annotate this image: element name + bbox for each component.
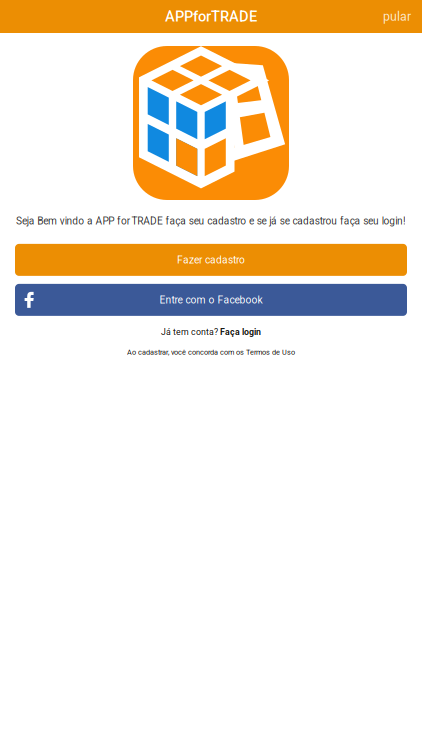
staticText: Fazer cadastro bbox=[177, 254, 245, 266]
button[interactable]: Já tem conta? Faça login bbox=[151, 323, 271, 341]
button[interactable]: Fazer cadastro bbox=[15, 244, 407, 276]
button[interactable]: Ao cadastrar, você concorda com os Termo… bbox=[117, 345, 305, 359]
staticText: APPforTRADE bbox=[165, 8, 257, 25]
button[interactable]: pular bbox=[372, 1, 422, 32]
staticText: Ao cadastrar, você concorda com os Termo… bbox=[127, 348, 295, 356]
staticText: Seja Bem vindo a APP for TRADE faça seu … bbox=[16, 215, 406, 227]
button[interactable]: Entre com o Facebook bbox=[15, 284, 407, 316]
staticText: pular bbox=[383, 9, 411, 24]
staticText: Já tem conta? Faça login bbox=[161, 327, 261, 337]
staticText: Entre com o Facebook bbox=[159, 294, 262, 306]
